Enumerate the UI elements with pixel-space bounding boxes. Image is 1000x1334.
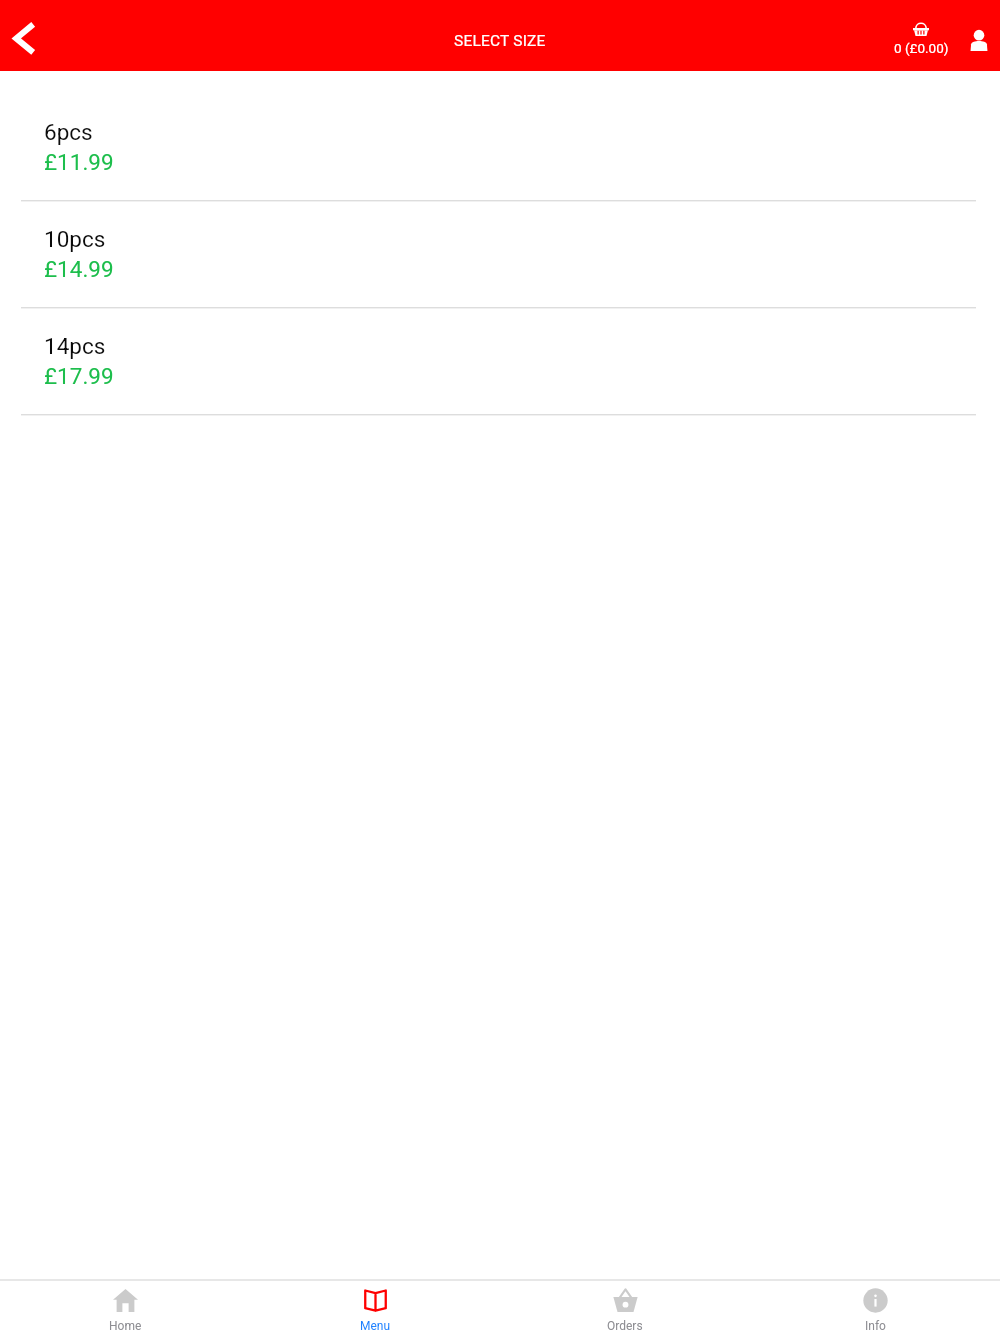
staticText: £14.99 [44, 256, 114, 282]
button[interactable]: 10pcs [0, 201, 1000, 308]
button[interactable]: 6pcs [0, 94, 1000, 201]
button[interactable]: Info [750, 1281, 1000, 1334]
button[interactable]: Menu [250, 1281, 500, 1334]
staticText: 0 (£0.00) [894, 40, 949, 56]
staticText: Menu [360, 1319, 391, 1333]
staticText: £17.99 [44, 363, 114, 389]
button[interactable]: Home [0, 1281, 250, 1334]
staticText: Info [865, 1319, 886, 1333]
button[interactable]: 0 (£0.00) [881, 0, 961, 71]
staticText: SELECT SIZE [454, 32, 546, 50]
button[interactable]: Account [963, 24, 995, 56]
button[interactable]: Orders [500, 1281, 750, 1334]
staticText: £11.99 [44, 149, 114, 175]
staticText: 10pcs [44, 226, 106, 252]
button[interactable]: 14pcs [0, 308, 1000, 415]
staticText: Orders [607, 1319, 643, 1333]
button[interactable]: Back [0, 0, 66, 71]
staticText: Home [109, 1319, 142, 1333]
staticText: 14pcs [44, 333, 106, 359]
staticText: 6pcs [44, 119, 93, 145]
